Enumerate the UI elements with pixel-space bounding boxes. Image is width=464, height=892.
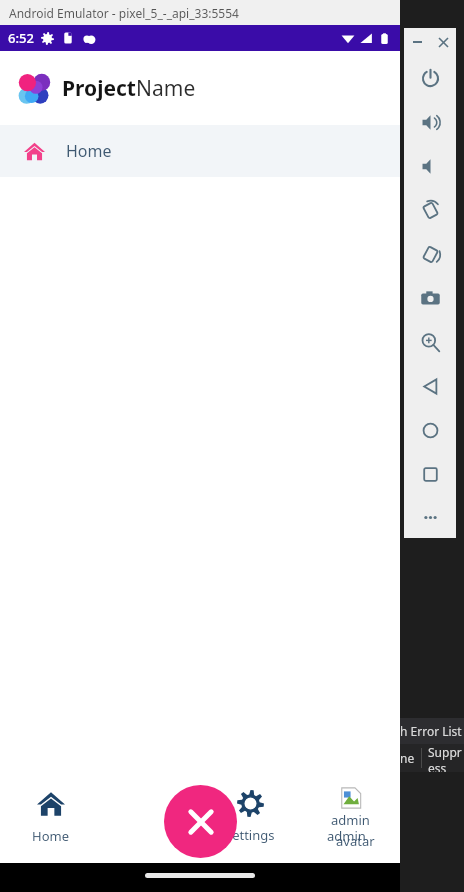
staticText: 6:52 [8,29,34,47]
staticText: h Error List [400,723,462,739]
staticText: Suppress [428,744,464,772]
staticText: Android Emulator - pixel_5_-_api_33:5554 [9,5,239,21]
staticText: avatar [336,832,375,850]
button[interactable]: Power [404,56,456,100]
other: admin avatar [340,787,362,809]
button[interactable]: Settings [200,771,300,863]
staticText: Home [32,827,69,845]
button[interactable]: Close window [430,28,456,56]
button[interactable]: Minimize [404,28,430,56]
button[interactable]: Home [404,408,456,452]
staticText: Settings [225,826,275,844]
button[interactable]: Zoom [404,320,456,364]
staticText: admin [331,811,370,829]
other: Logo [16,70,52,106]
staticText: ne [400,750,415,766]
button[interactable]: Rotate left [404,188,456,232]
staticText: admin [327,827,366,845]
button[interactable]: Volume up [404,100,456,144]
staticText: Home [66,140,112,162]
button[interactable]: More [404,496,456,538]
button[interactable]: Volume down [404,144,456,188]
button[interactable]: Home [0,125,400,177]
button[interactable]: Close [164,785,237,858]
staticText: Project [62,74,136,103]
button[interactable]: Recents [404,452,456,496]
button[interactable]: Screenshot [404,276,456,320]
button[interactable]: Back [404,364,456,408]
staticText: Name [136,74,196,103]
button[interactable]: Rotate right [404,232,456,276]
button[interactable]: Home [0,771,100,863]
button[interactable]: Logo [0,51,400,125]
button[interactable]: admin avatar [300,771,400,863]
